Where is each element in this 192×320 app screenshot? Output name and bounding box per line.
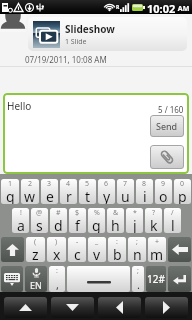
staticText: 5 (85, 179, 90, 189)
staticText: 8 (142, 179, 147, 189)
staticText: x (53, 245, 61, 262)
button[interactable]: 5 (79, 179, 96, 204)
staticText: : (116, 237, 118, 247)
staticText: Slideshow (65, 22, 115, 36)
staticText: n (133, 245, 142, 262)
staticText: $ (75, 208, 80, 218)
button[interactable]: 2 (21, 179, 39, 204)
staticText: b (113, 245, 122, 262)
staticText: 7 (123, 179, 128, 189)
staticText: k (150, 216, 158, 233)
staticText: 1 Slide (65, 37, 87, 47)
staticText: ; (136, 237, 138, 247)
staticText: + (155, 237, 160, 247)
staticText: ) (55, 237, 58, 247)
button[interactable]: : (49, 266, 65, 292)
staticText: p (178, 187, 187, 204)
button[interactable]: Shift (1, 237, 24, 262)
staticText: Send (156, 120, 178, 132)
staticText: q (6, 187, 15, 204)
staticText: % (94, 208, 100, 218)
button[interactable]: ( (26, 237, 45, 262)
button[interactable]: Down (51, 297, 94, 318)
button[interactable]: Voice input / language (25, 266, 47, 292)
staticText: s (36, 216, 43, 233)
button[interactable]: ; (128, 237, 146, 262)
button[interactable]: 8 (136, 179, 153, 204)
button[interactable]: ! (12, 208, 29, 233)
button[interactable]: $ (69, 208, 86, 233)
staticText: y (103, 187, 111, 204)
button[interactable]: Send (150, 115, 184, 137)
button[interactable]: ; (132, 266, 144, 292)
staticText: m (150, 245, 164, 262)
staticText: _ (95, 237, 99, 247)
button[interactable]: / (164, 208, 181, 233)
staticText: a (17, 216, 25, 233)
staticText: d (54, 216, 63, 233)
staticText: ! (20, 208, 22, 218)
staticText: 07/19/2011, 10:08 AM (25, 54, 107, 65)
button[interactable]: ? (145, 208, 162, 233)
staticText: 3 (47, 179, 52, 189)
staticText: c (74, 245, 81, 262)
staticText: , (56, 277, 59, 292)
button[interactable]: Attach (150, 145, 184, 169)
staticText: z (32, 245, 39, 262)
staticText: AM (176, 4, 190, 14)
staticText: 12# (147, 272, 165, 286)
staticText: ( (34, 237, 37, 247)
staticText: R (116, 4, 120, 11)
staticText: 1 (8, 179, 13, 189)
staticText: # (56, 208, 61, 218)
button[interactable]: Left (98, 297, 141, 318)
button[interactable]: + (148, 237, 166, 262)
staticText: @ (36, 208, 43, 218)
button[interactable]: * (126, 208, 143, 233)
button[interactable]: 1 (1, 179, 19, 204)
staticText: 10:02 (147, 1, 176, 15)
staticText: : (56, 266, 58, 276)
button[interactable]: Space (67, 266, 130, 292)
button[interactable]: % (88, 208, 105, 233)
button[interactable]: _ (88, 237, 106, 262)
staticText: . (137, 277, 140, 292)
button[interactable]: 6 (98, 179, 115, 204)
staticText: i (143, 187, 147, 204)
button[interactable]: Keyboard settings (1, 266, 23, 292)
button[interactable]: 12# (146, 266, 166, 292)
staticText: h (111, 216, 120, 233)
staticText: EN (30, 279, 42, 291)
button[interactable]: : (108, 237, 126, 262)
button[interactable]: & (107, 208, 124, 233)
staticText: ? (152, 208, 156, 218)
button[interactable]: Enter (168, 266, 191, 292)
staticText: j (133, 216, 137, 233)
staticText: v (93, 245, 101, 262)
button[interactable]: Backspace (168, 237, 191, 262)
staticText: r (66, 187, 72, 204)
button[interactable]: Up (4, 297, 47, 318)
staticText: - (76, 237, 79, 247)
staticText: & (113, 208, 119, 218)
button[interactable]: 9 (155, 179, 172, 204)
staticText: / (171, 208, 174, 218)
staticText: 9 (161, 179, 166, 189)
button[interactable]: - (68, 237, 86, 262)
staticText: 5 / 160 (158, 104, 184, 115)
button[interactable]: 0 (174, 179, 191, 204)
staticText: ; (137, 266, 139, 276)
button[interactable]: Right (145, 297, 188, 318)
button[interactable]: 7 (117, 179, 134, 204)
staticText: 2 (28, 179, 33, 189)
staticText: t (85, 187, 91, 204)
staticText: Hello (7, 99, 32, 113)
button[interactable]: @ (31, 208, 48, 233)
button[interactable]: # (50, 208, 67, 233)
staticText: 4 (66, 179, 71, 189)
button[interactable]: 4 (60, 179, 77, 204)
button[interactable]: 3 (41, 179, 58, 204)
button[interactable]: Slideshow (28, 17, 187, 51)
staticText: 6 (104, 179, 109, 189)
button[interactable]: ) (47, 237, 66, 262)
